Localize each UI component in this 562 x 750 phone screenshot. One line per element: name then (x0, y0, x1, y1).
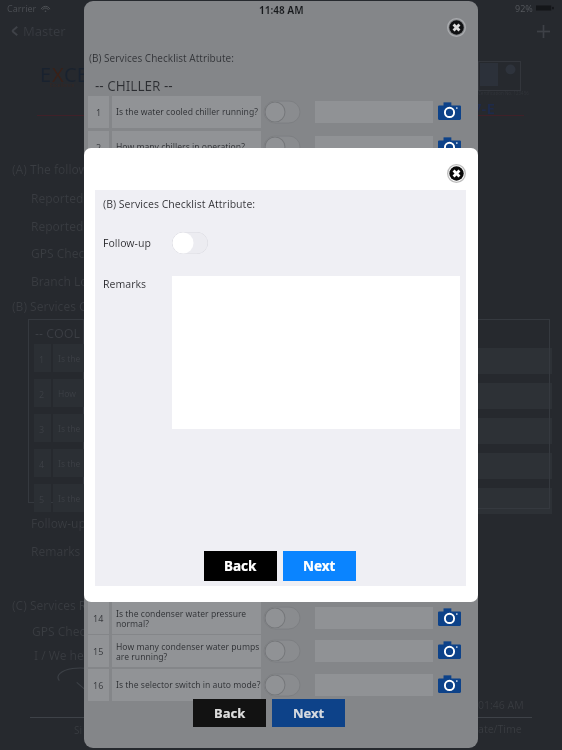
button[interactable]: Back (193, 699, 266, 727)
staticText: Is the (58, 458, 81, 470)
staticText: Is the selector switch in auto mode? (116, 679, 261, 691)
staticText: Is the water cooled chiller running? (116, 106, 258, 118)
staticText: Is the condenser water pressure normal? (116, 608, 247, 629)
staticText: 92% (515, 2, 533, 14)
staticText: (B) Services Ch (12, 298, 95, 314)
button[interactable]: How many chillers in operation? (116, 131, 261, 163)
button[interactable]: Back (204, 551, 277, 581)
button[interactable]: Next (283, 551, 356, 581)
staticText: 1 (96, 106, 102, 118)
staticText: Follow-up (31, 515, 86, 531)
staticText: 2 (96, 141, 102, 153)
button[interactable]: Is the selector switch in auto mode? (116, 669, 261, 701)
button[interactable]: Take photo (437, 607, 462, 626)
staticText: Is the (58, 353, 81, 365)
staticText: 01:46 AM (478, 698, 524, 712)
staticText: 5 (39, 493, 45, 505)
staticText: 2 (39, 388, 45, 400)
button[interactable]: Close (445, 162, 467, 184)
staticText: Master (23, 22, 66, 40)
staticText: Certification No. 123456 (478, 90, 529, 96)
button[interactable]: Take photo (437, 640, 462, 659)
button[interactable]: Is the condenser water pressure normal? (116, 602, 261, 634)
button[interactable]: Next (272, 699, 345, 727)
staticText: 00022 (418, 159, 461, 179)
staticText: -- COOL (35, 325, 81, 342)
staticText: 7-E (473, 98, 495, 118)
button[interactable]: Is the water cooled chiller running? (116, 96, 261, 128)
staticText: 3 (39, 423, 45, 435)
staticText: I / We here (34, 647, 96, 663)
staticText: GPS Check (31, 245, 91, 261)
staticText: GPS Check (32, 623, 92, 639)
button[interactable]: How many condenser water pumps are runni… (116, 635, 261, 667)
button[interactable]: Take photo (437, 674, 462, 693)
staticText: Follow-up (103, 236, 151, 250)
staticText: Carrier (7, 2, 37, 14)
button[interactable]: Close (445, 16, 467, 38)
staticText: Back (214, 704, 246, 722)
staticText: 15 (93, 645, 104, 657)
staticText: -- CHILLER -- (95, 77, 173, 95)
button[interactable]: Take photo (437, 136, 462, 155)
staticText: ate/Time (478, 722, 522, 736)
staticText: How many chillers in operation? (116, 141, 245, 153)
staticText: 11:48 AM (259, 3, 304, 17)
staticText: Is the (58, 493, 81, 505)
staticText: Back (224, 557, 257, 575)
staticText: Reported E (31, 218, 94, 234)
staticText: Excellence (50, 82, 75, 89)
button[interactable] (315, 136, 433, 158)
staticText: 4 (39, 458, 45, 470)
staticText: Remarks (31, 543, 81, 559)
staticText: Branch Loc (31, 273, 94, 289)
staticText: How (58, 388, 76, 400)
staticText: Si (74, 723, 83, 737)
staticText: E (40, 61, 52, 88)
staticText: (B) Services Checklist Attribute: (103, 197, 256, 211)
staticText: (B) Services Checklist Attribute: (89, 51, 234, 65)
staticText: Next (303, 557, 336, 575)
staticText: CEL (64, 61, 99, 88)
staticText: Remarks (103, 277, 147, 291)
staticText: X (52, 61, 64, 88)
button[interactable]: Follow-up toggle (172, 232, 208, 254)
staticText: Is the (58, 423, 81, 435)
button[interactable]: Take photo (437, 101, 462, 120)
staticText: 14 (93, 612, 104, 624)
staticText: How many condenser water pumps are runni… (116, 641, 260, 662)
staticText: Next (293, 704, 325, 722)
staticText: (A) The followi (12, 161, 92, 177)
staticText: Reported D (31, 190, 96, 206)
staticText: 16 (93, 679, 104, 691)
staticText: (C) Services Re (12, 597, 94, 613)
